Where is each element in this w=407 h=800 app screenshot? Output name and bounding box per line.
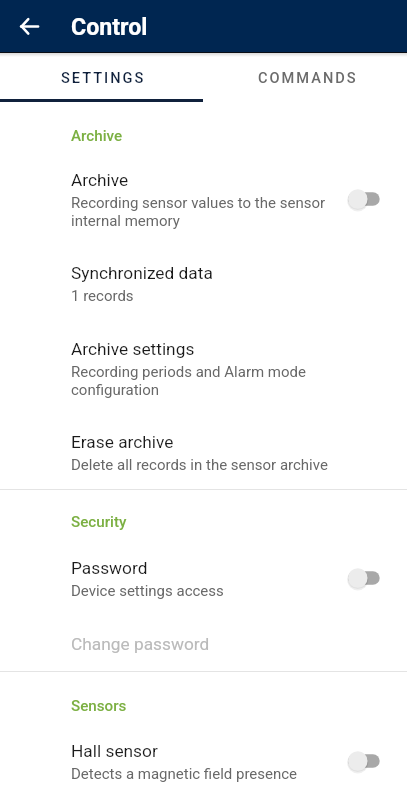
- button[interactable]: Erase archive: [0, 422, 407, 484]
- staticText: Change password: [71, 634, 210, 654]
- staticText: 1 records: [71, 287, 134, 305]
- staticText: SETTINGS: [61, 69, 146, 86]
- staticText: Recording sensor values to the sensor in…: [71, 194, 326, 230]
- button[interactable]: Back: [0, 0, 56, 53]
- staticText: Hall sensor: [71, 741, 158, 761]
- staticText: Erase archive: [71, 432, 174, 452]
- staticText: Security: [71, 513, 127, 531]
- button[interactable]: Archive: [0, 160, 407, 240]
- button[interactable]: Archive settings: [0, 329, 407, 409]
- button[interactable]: SETTINGS: [0, 53, 203, 99]
- staticText: Delete all records in the sensor archive: [71, 456, 328, 474]
- button[interactable]: Password: [0, 548, 407, 610]
- staticText: COMMANDS: [258, 69, 358, 86]
- staticText: Archive: [71, 127, 123, 145]
- staticText: Sensors: [71, 697, 127, 715]
- staticText: Recording periods and Alarm mode configu…: [71, 363, 306, 399]
- staticText: Archive: [71, 170, 129, 190]
- staticText: Synchronized data: [71, 263, 213, 283]
- staticText: Detects a magnetic field presence: [71, 765, 298, 783]
- button[interactable]: Synchronized data: [0, 253, 407, 315]
- button[interactable]: Change password: [0, 620, 407, 668]
- staticText: Archive settings: [71, 339, 195, 359]
- staticText: Device settings access: [71, 582, 224, 600]
- staticText: Control: [71, 13, 148, 40]
- button[interactable]: COMMANDS: [203, 53, 407, 99]
- button[interactable]: Hall sensor: [0, 731, 407, 793]
- staticText: Password: [71, 558, 148, 578]
